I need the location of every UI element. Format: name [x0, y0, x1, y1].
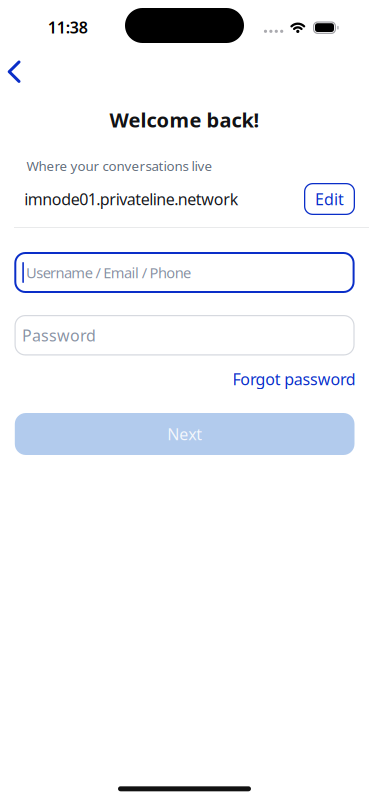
staticText: Where your conversations live: [26, 157, 212, 175]
button[interactable]: [0, 55, 34, 89]
button[interactable]: Edit: [304, 183, 355, 215]
staticText: Next: [167, 423, 202, 445]
staticText: 11:38: [48, 17, 88, 38]
staticText: Password: [22, 325, 96, 346]
button[interactable]: Forgot password: [233, 368, 356, 390]
staticText: Username / Email / Phone: [26, 263, 191, 282]
staticText: Forgot password: [233, 368, 356, 390]
button[interactable]: Username / Email / Phone: [14, 252, 355, 293]
button[interactable]: Next: [15, 413, 354, 455]
staticText: Welcome back!: [109, 106, 259, 133]
staticText: Edit: [315, 188, 344, 210]
staticText: imnode01.privateline.network: [24, 188, 239, 210]
button[interactable]: Password: [14, 315, 355, 355]
